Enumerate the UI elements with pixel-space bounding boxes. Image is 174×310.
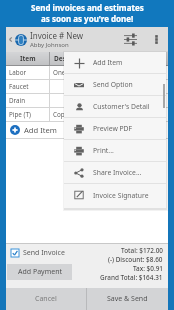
button[interactable]: Share Invoice... <box>64 162 166 183</box>
staticText: Labor <box>9 68 27 77</box>
staticText: Copper <box>53 110 75 119</box>
button[interactable]: Customer's Detail <box>64 96 166 117</box>
staticText: Abby Johnson <box>30 41 69 49</box>
button[interactable]: Cancel <box>6 288 86 310</box>
button[interactable]: Print... <box>64 140 166 161</box>
button[interactable]: Back <box>6 27 15 52</box>
button[interactable]: Add Payment <box>7 264 72 280</box>
staticText: Total: $172.00 <box>121 246 163 255</box>
staticText: Share Invoice... <box>93 168 142 177</box>
button[interactable]: Add Item <box>6 122 168 138</box>
button[interactable]: Send Option <box>64 74 166 95</box>
staticText: Invoice Signature <box>93 191 149 200</box>
staticText: Save & Send <box>107 294 148 304</box>
staticText: Cancel <box>35 294 57 304</box>
staticText: Drain <box>9 96 26 105</box>
staticText: One time charge <box>53 68 103 77</box>
staticText: Pipe (T) <box>9 110 31 119</box>
staticText: Tax: $0.91 <box>133 264 163 273</box>
staticText: Grand Total: $164.31 <box>100 273 163 282</box>
staticText: Add Item <box>24 125 57 135</box>
button[interactable]: Preview PDF <box>64 118 166 139</box>
staticText: (-) Discount: $8.60 <box>108 255 163 264</box>
button[interactable]: Send Invoice <box>6 247 65 258</box>
staticText: Description <box>54 54 92 63</box>
staticText: Invoice # New <box>30 30 84 41</box>
staticText: Item <box>20 54 36 63</box>
staticText: Send invoices and estimates <box>31 2 144 13</box>
button[interactable]: More options <box>145 27 168 52</box>
staticText: Send Option <box>93 80 133 89</box>
staticText: as soon as you're done! <box>41 13 134 24</box>
button[interactable]: Settings <box>115 27 145 52</box>
button[interactable]: Add Item <box>64 52 166 73</box>
staticText: Add Payment <box>18 267 62 277</box>
staticText: Add Item <box>93 58 123 67</box>
staticText: Send Invoice <box>23 248 65 258</box>
staticText: Print... <box>93 146 114 155</box>
button[interactable]: Invoice Signature <box>64 184 166 206</box>
button[interactable]: Save & Send <box>87 288 168 310</box>
staticText: Customer's Detail <box>93 102 150 111</box>
staticText: Faucet <box>9 82 29 91</box>
staticText: Preview PDF <box>93 124 133 133</box>
